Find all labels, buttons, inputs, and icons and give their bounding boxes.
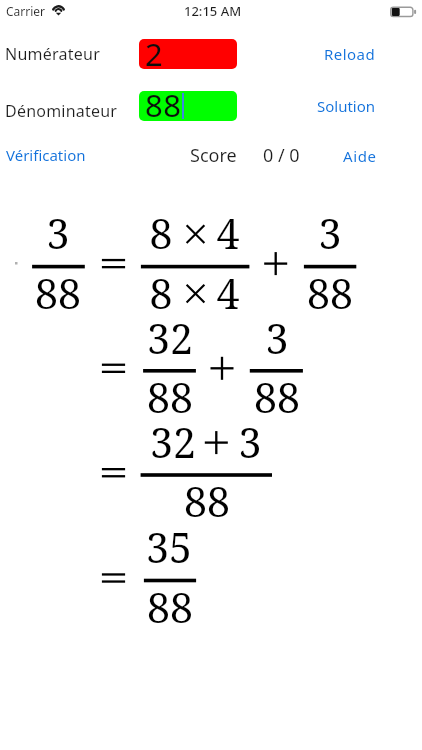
staticText: 3 <box>150 414 350 470</box>
button[interactable]: Aide <box>343 145 377 167</box>
staticText: 0 / 0 <box>263 143 300 168</box>
other: Battery 40 percent <box>388 5 420 20</box>
staticText: 88 <box>0 265 158 321</box>
staticText: 35 <box>69 519 269 575</box>
staticText: Solution <box>317 96 376 116</box>
staticText: Aide <box>343 146 377 166</box>
staticText: 88 <box>70 579 270 635</box>
staticText: 32 <box>70 310 270 366</box>
other: Wi-Fi signal <box>50 4 68 18</box>
staticText: 8 <box>61 265 261 321</box>
staticText: 88 <box>145 84 215 128</box>
staticText: 88 <box>70 369 270 425</box>
staticText: 2 <box>145 33 215 77</box>
staticText: Carrier <box>6 3 46 19</box>
button[interactable]: Vérification <box>6 144 86 166</box>
staticText: Numérateur <box>5 43 101 65</box>
staticText: 4 <box>128 265 328 321</box>
button[interactable]: Reload <box>324 43 376 65</box>
button[interactable]: Denominator input <box>139 91 237 121</box>
staticText: 12:15 AM <box>184 2 242 20</box>
staticText: Vérification <box>6 145 86 165</box>
staticText: 32 <box>73 414 273 470</box>
staticText: 4 <box>128 205 328 261</box>
staticText: 88 <box>177 369 377 425</box>
staticText: Dénominateur <box>5 100 118 122</box>
staticText: 88 <box>230 265 422 321</box>
staticText: 3 <box>0 205 158 261</box>
staticText: Score <box>190 143 237 168</box>
staticText: 8 <box>61 205 261 261</box>
staticText: 3 <box>230 205 422 261</box>
button[interactable]: Numerator input <box>139 39 237 69</box>
staticText: Reload <box>324 44 376 64</box>
staticText: 3 <box>177 310 377 366</box>
staticText: 88 <box>107 473 307 529</box>
button[interactable]: Solution <box>317 95 376 117</box>
